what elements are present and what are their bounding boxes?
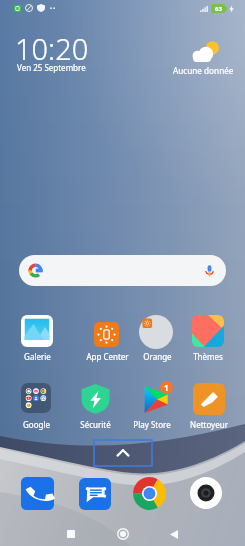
staticText: Nettoyeur — [190, 419, 228, 430]
staticText: 63 — [215, 5, 222, 13]
button[interactable] — [128, 312, 184, 360]
staticText: Aucune donnée — [173, 65, 234, 76]
button[interactable]: Search — [19, 255, 226, 286]
button[interactable] — [180, 312, 236, 360]
button[interactable] — [9, 312, 65, 360]
button[interactable] — [181, 380, 237, 428]
button[interactable] — [67, 380, 123, 428]
staticText: Ven 25 Septembre — [17, 62, 86, 73]
button[interactable]: All apps — [94, 440, 152, 466]
staticText: Google — [23, 419, 50, 430]
button[interactable]: Aucune donnée — [173, 40, 234, 76]
staticText: Galerie — [24, 351, 51, 362]
button[interactable]: Phone — [21, 477, 54, 510]
staticText: 1 — [164, 382, 169, 393]
staticText: Play Store — [133, 419, 171, 430]
button[interactable]: Recent apps — [57, 522, 85, 546]
button[interactable]: Messages — [79, 478, 111, 510]
button[interactable]: Chrome — [133, 477, 166, 510]
button[interactable] — [78, 315, 134, 363]
button[interactable] — [8, 380, 64, 428]
button[interactable]: Back — [160, 522, 188, 546]
staticText: Thèmes — [193, 351, 223, 362]
staticText: App Center — [86, 351, 129, 362]
staticText: Orange — [143, 351, 172, 362]
button[interactable]: Home — [109, 522, 137, 546]
staticText: 10:20 — [15, 29, 89, 68]
button[interactable]: 1 — [126, 380, 182, 428]
staticText: Sécurité — [80, 419, 111, 430]
button[interactable]: Camera — [190, 477, 222, 509]
button[interactable]: 10:20 — [15, 29, 89, 79]
